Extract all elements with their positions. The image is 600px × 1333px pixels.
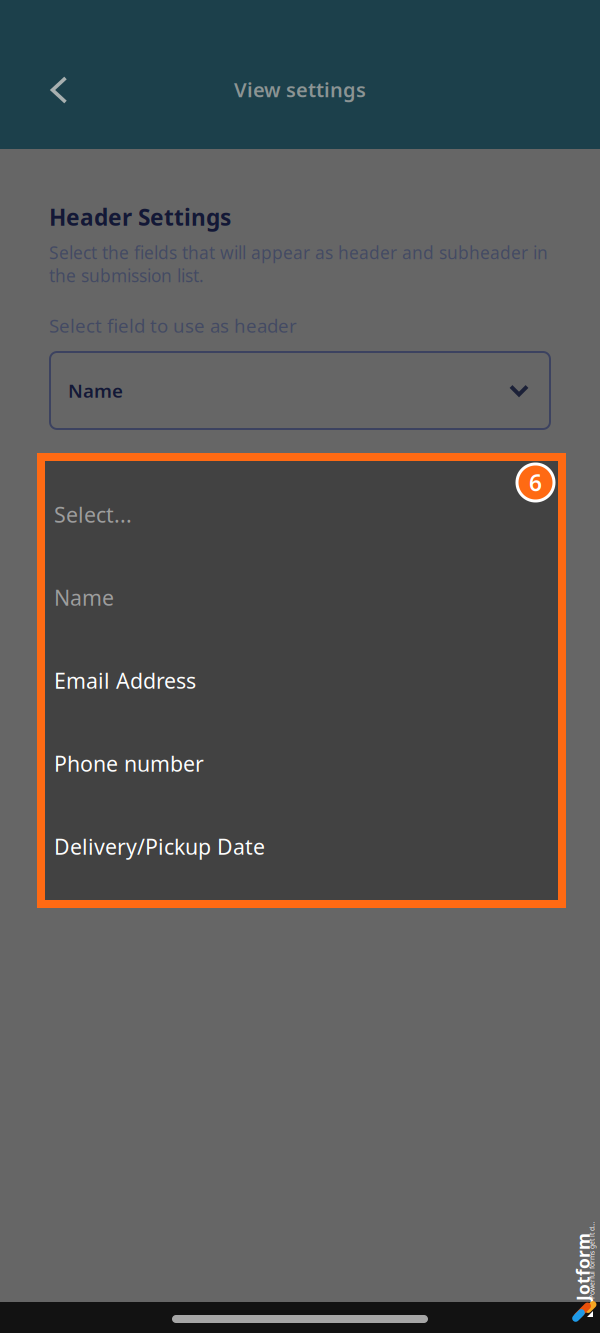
staticText: Header Settings: [49, 202, 231, 232]
button[interactable]: Name: [50, 352, 550, 429]
staticText: Email Address: [54, 666, 196, 695]
staticText: View settings: [234, 76, 366, 103]
button[interactable]: Email Address: [45, 639, 558, 722]
staticText: Select the fields that will appear as he…: [49, 241, 548, 287]
staticText: Name: [68, 378, 123, 403]
button[interactable]: Name: [45, 556, 558, 639]
button[interactable]: Select...: [45, 473, 558, 556]
button[interactable]: Phone number: [45, 722, 558, 805]
staticText: Select...: [54, 500, 132, 529]
staticText: Powerful forms get it done: [552, 1255, 600, 1263]
staticText: Name: [54, 583, 114, 612]
staticText: 6: [529, 467, 542, 497]
button[interactable]: Delivery/Pickup Date: [45, 805, 558, 888]
staticText: Delivery/Pickup Date: [54, 832, 265, 861]
staticText: Phone number: [54, 749, 204, 778]
staticText: Select field to use as header: [49, 313, 297, 338]
staticText: Jotform: [548, 1254, 600, 1277]
button[interactable]: Back: [33, 64, 85, 116]
